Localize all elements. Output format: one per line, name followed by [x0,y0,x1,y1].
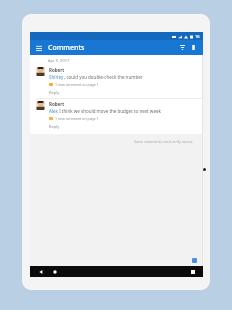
staticText: Shirley [49,74,64,80]
staticText: Reply [49,90,60,95]
staticText: Robert [49,67,65,73]
button[interactable]: Open navigation drawer [34,43,44,53]
button[interactable]: Robert [30,99,203,131]
staticText: Comments [48,43,85,53]
staticText: 1 new comment on page 1 [55,116,99,121]
staticText: Apr 5, 2017 [48,58,70,63]
staticText: Reply [49,124,60,129]
button[interactable]: Filter [177,42,188,53]
button[interactable]: Back [36,267,45,276]
button[interactable]: Robert [30,65,203,97]
staticText: , could you double-check the number [64,74,143,80]
staticText: I think we should move the budget to nex… [58,108,161,114]
button[interactable]: Reply [49,89,60,96]
staticText: Robert [49,101,65,107]
button[interactable]: More options [189,42,198,53]
staticText: Alex [49,108,58,114]
button[interactable]: Reply [49,123,60,130]
button[interactable]: Recent apps [188,267,197,276]
staticText: Some comments need verify access [134,139,193,144]
button[interactable]: Home [50,267,59,276]
staticText: 16 [195,34,200,39]
staticText: 1 new comment on page 1 [55,82,99,87]
button[interactable]: Compose comment [192,258,197,263]
